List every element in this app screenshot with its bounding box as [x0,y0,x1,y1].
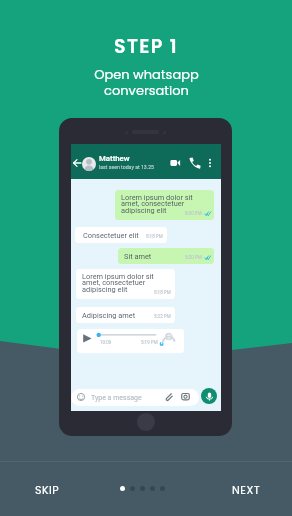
button[interactable]: Play voice message [77,329,184,353]
staticText: SKIP [35,482,60,497]
staticText: Lorem ipsum dolor sit amet, consectetuer… [82,272,154,294]
staticText: Open whatsapp conversation [94,65,199,99]
button[interactable]: Back [72,158,82,168]
staticText: NEXT [232,482,261,497]
staticText: Type a message [91,394,142,402]
staticText: 5:18 PM [146,234,163,239]
staticText: Consectetuer elit [83,231,139,240]
button[interactable]: More options [205,158,215,168]
staticText: Adipiscing amet [82,311,136,320]
staticText: 5:18 PM [154,290,171,295]
staticText: 5:20 PM [185,255,202,260]
staticText: last seen today at 13.25 [99,164,154,170]
staticText: Sit amet [124,252,152,261]
staticText: 8:00 PM [185,211,202,216]
staticText: 5:19 PM [141,340,158,345]
button[interactable]: NEXT [213,472,279,506]
button[interactable]: Record voice message [201,388,217,404]
staticText: STEP 1 [114,33,178,60]
button[interactable]: SKIP [14,472,80,506]
staticText: 5:22 PM [154,314,171,319]
button[interactable]: Call [189,157,201,169]
button[interactable]: Type a message [71,389,199,406]
staticText: Matthew [99,154,130,163]
staticText: Lorem ipsum dolor sit amet, consectetuer… [121,193,193,215]
staticText: 10:06 [100,340,112,345]
button[interactable]: Video call [169,157,181,169]
